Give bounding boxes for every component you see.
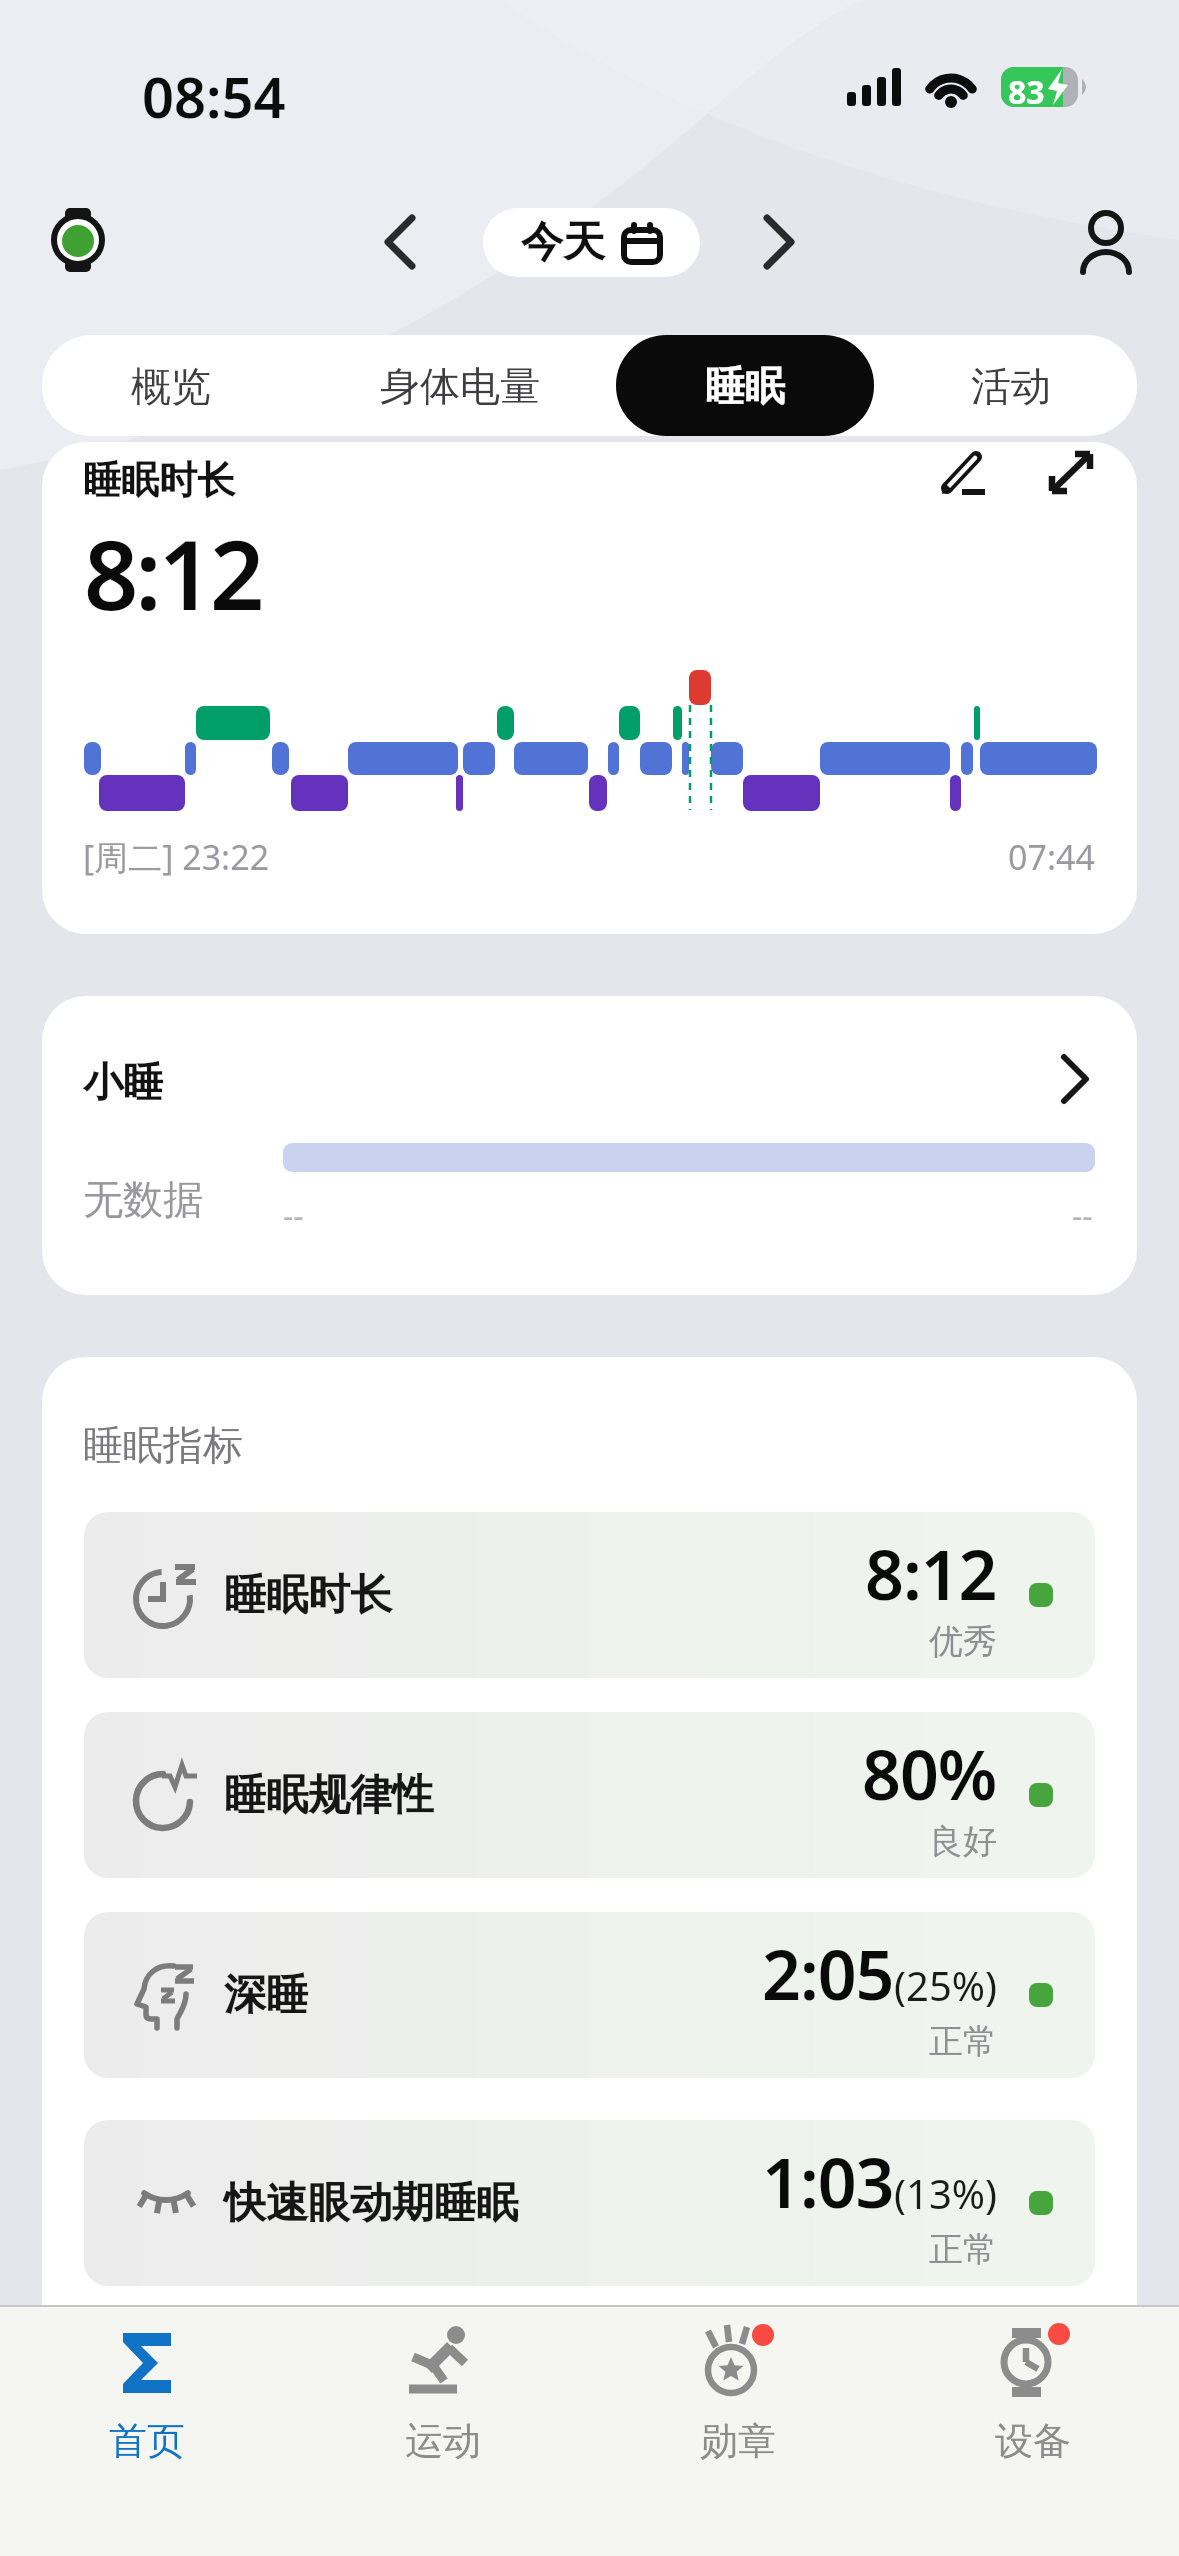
button[interactable]: 睡眠规律性 bbox=[84, 1712, 1095, 1878]
button[interactable]: 快速眼动期睡眠 bbox=[84, 2120, 1095, 2286]
button[interactable] bbox=[370, 210, 434, 274]
staticText: -- bbox=[1072, 1194, 1093, 1238]
staticText: 睡眠时长 bbox=[224, 1569, 392, 1622]
button[interactable] bbox=[745, 210, 809, 274]
staticText: 睡眠时长 bbox=[83, 456, 235, 504]
staticText: 08:54 bbox=[142, 58, 286, 134]
staticText: 正常 bbox=[929, 2228, 997, 2271]
button[interactable] bbox=[1042, 1051, 1102, 1111]
staticText: 睡眠规律性 bbox=[224, 1769, 434, 1822]
staticText: 深睡 bbox=[224, 1969, 308, 2022]
button[interactable] bbox=[50, 206, 106, 274]
button[interactable] bbox=[1074, 206, 1138, 274]
staticText: 1:03 bbox=[762, 2135, 894, 2228]
staticText: 快速眼动期睡眠 bbox=[224, 2177, 518, 2230]
button[interactable]: 首页 bbox=[52, 2317, 242, 2487]
staticText: 07:44 bbox=[1008, 834, 1095, 880]
staticText: 勋章 bbox=[700, 2417, 776, 2465]
staticText: 设备 bbox=[995, 2417, 1071, 2465]
staticText: 优秀 bbox=[929, 1620, 997, 1663]
staticText: [周二] 23:22 bbox=[83, 834, 270, 880]
staticText: (13%) bbox=[894, 2166, 997, 2220]
button[interactable]: 深睡 bbox=[84, 1912, 1095, 2078]
staticText: 活动 bbox=[971, 361, 1051, 411]
button[interactable]: 活动 bbox=[916, 335, 1106, 436]
staticText: 2:05 bbox=[762, 1927, 894, 2020]
button[interactable]: 身体电量 bbox=[338, 335, 582, 436]
staticText: 运动 bbox=[405, 2417, 481, 2465]
staticText: 8:12 bbox=[84, 508, 262, 637]
button[interactable]: 睡眠 bbox=[616, 335, 874, 436]
staticText: 概览 bbox=[131, 361, 211, 411]
staticText: 睡眠 bbox=[705, 361, 785, 411]
staticText: 首页 bbox=[109, 2417, 185, 2465]
button[interactable] bbox=[1042, 450, 1112, 514]
staticText: 80% bbox=[862, 1727, 997, 1820]
button[interactable]: 今天 bbox=[483, 208, 700, 277]
staticText: 小睡 bbox=[83, 1057, 163, 1107]
button[interactable]: 概览 bbox=[50, 335, 292, 436]
button[interactable]: 设备 bbox=[938, 2317, 1128, 2487]
staticText: 83 bbox=[1008, 70, 1045, 114]
button[interactable] bbox=[932, 450, 1002, 514]
button[interactable]: 运动 bbox=[348, 2317, 538, 2487]
staticText: 身体电量 bbox=[380, 361, 540, 411]
button[interactable]: 睡眠时长 bbox=[84, 1512, 1095, 1678]
staticText: 无数据 bbox=[83, 1174, 203, 1224]
staticText: (25%) bbox=[894, 1958, 997, 2012]
staticText: 8:12 bbox=[865, 1527, 997, 1620]
staticText: 良好 bbox=[929, 1820, 997, 1863]
staticText: 正常 bbox=[929, 2020, 997, 2063]
button[interactable]: 勋章 bbox=[643, 2317, 833, 2487]
staticText: -- bbox=[283, 1194, 304, 1238]
staticText: 今天 bbox=[521, 216, 605, 269]
staticText: 睡眠指标 bbox=[83, 1420, 243, 1470]
